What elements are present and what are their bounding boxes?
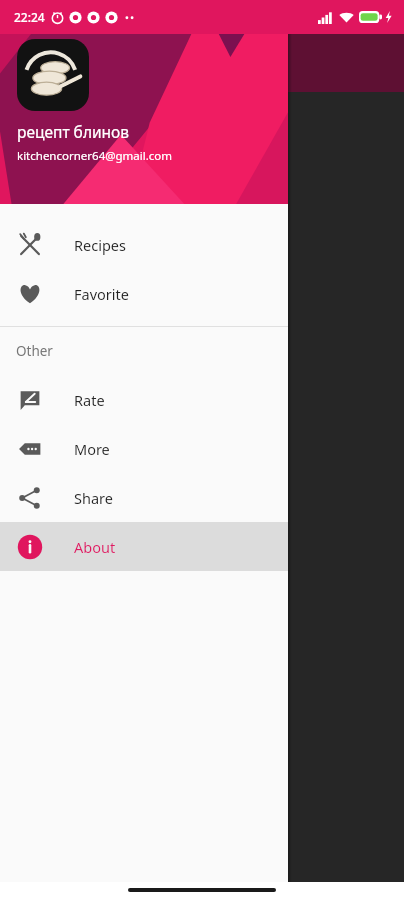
staticText: Share bbox=[74, 488, 113, 508]
staticText: Favorite bbox=[74, 284, 129, 304]
button[interactable]: Share bbox=[0, 473, 288, 522]
staticText: рецепт блинов bbox=[17, 121, 130, 142]
staticText: About bbox=[74, 537, 116, 557]
button[interactable]: Recipes bbox=[0, 220, 288, 269]
staticText: More bbox=[74, 439, 110, 459]
button[interactable]: About bbox=[0, 522, 288, 571]
staticText: 22:24 bbox=[14, 9, 45, 25]
button[interactable]: Rate bbox=[0, 375, 288, 424]
staticText: Rate bbox=[74, 390, 105, 410]
button[interactable]: More bbox=[0, 424, 288, 473]
staticText: Recipes bbox=[74, 235, 126, 255]
staticText: Other bbox=[16, 342, 53, 360]
staticText: kitchencorner64@gmail.com bbox=[17, 148, 173, 164]
button[interactable]: Favorite bbox=[0, 269, 288, 318]
